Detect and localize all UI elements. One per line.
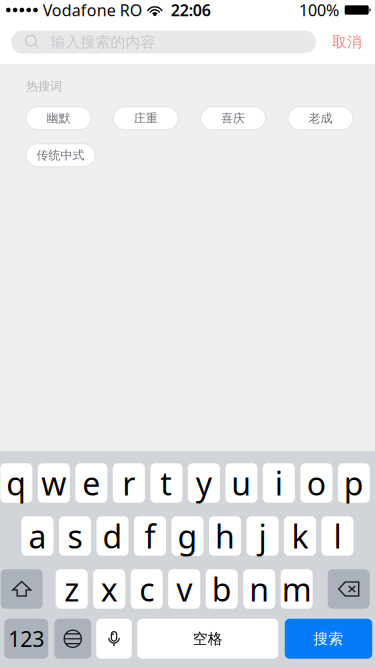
staticText: u [231,462,251,504]
button[interactable]: s [59,516,91,556]
staticText: q [6,462,26,504]
button[interactable]: 传统中式 [26,144,95,167]
button[interactable]: n [243,569,275,609]
button[interactable]: a [21,516,53,556]
button[interactable]: o [300,463,332,503]
button[interactable]: c [131,569,163,609]
staticText: 幽默 [46,111,70,126]
button[interactable]: 取消 [329,27,365,57]
button[interactable]: t [150,463,182,503]
button[interactable]: f [134,516,166,556]
staticText: l [333,515,341,557]
button[interactable]: v [168,569,200,609]
staticText: s [67,515,82,557]
button[interactable]: l [321,516,353,556]
staticText: h [215,515,235,557]
button[interactable]: x [93,569,125,609]
staticText: w [41,462,66,504]
staticText: m [282,568,312,610]
button[interactable]: 空格 [137,619,278,659]
button[interactable]: k [284,516,316,556]
staticText: e [82,462,100,504]
staticText: 热搜词 [26,79,62,94]
staticText: o [307,462,326,504]
staticText: r [122,462,135,504]
button[interactable]: 庄重 [113,107,178,130]
staticText: 传统中式 [36,148,84,163]
staticText: 取消 [332,33,362,51]
staticText: 22:06 [171,0,211,21]
staticText: 喜庆 [221,111,245,126]
staticText: z [64,568,79,610]
staticText: 老成 [308,111,332,126]
staticText: b [212,568,232,610]
staticText: 输入搜索的内容 [50,33,155,51]
button[interactable]: u [225,463,257,503]
button[interactable]: 输入搜索的内容 [11,30,316,53]
staticText: 搜索 [313,630,343,648]
staticText: n [249,568,269,610]
staticText: j [258,515,266,557]
button[interactable]: 喜庆 [201,107,266,130]
staticText: Vodafone RO [43,0,142,21]
staticText: g [177,515,197,557]
button[interactable]: Dictation [96,619,132,659]
staticText: 100% [299,0,339,21]
button[interactable]: 老成 [288,107,353,130]
staticText: v [176,568,192,610]
staticText: p [344,462,364,504]
button[interactable]: r [113,463,145,503]
button[interactable]: p [338,463,370,503]
staticText: c [139,568,154,610]
staticText: 空格 [193,630,223,648]
button[interactable]: 搜索 [285,619,372,659]
button[interactable]: q [0,463,32,503]
button[interactable]: Next keyboard [54,619,91,659]
button[interactable]: h [209,516,241,556]
button[interactable]: w [38,463,70,503]
button[interactable]: j [246,516,278,556]
staticText: x [101,568,118,610]
staticText: d [102,515,122,557]
staticText: 123 [8,625,44,653]
button[interactable]: 123 [4,619,48,659]
button[interactable]: Shift [1,569,43,609]
staticText: f [144,515,155,557]
button[interactable]: g [171,516,203,556]
staticText: k [291,515,308,557]
button[interactable]: Delete [328,569,370,609]
staticText: a [28,515,46,557]
button[interactable]: b [206,569,238,609]
button[interactable]: 幽默 [26,107,91,130]
staticText: t [160,462,172,504]
staticText: y [196,462,212,504]
staticText: i [275,462,283,504]
button[interactable]: d [96,516,128,556]
staticText: 庄重 [134,111,158,126]
button[interactable]: e [75,463,107,503]
button[interactable]: z [56,569,88,609]
button[interactable]: m [281,569,313,609]
button[interactable]: y [188,463,220,503]
button[interactable]: i [263,463,295,503]
